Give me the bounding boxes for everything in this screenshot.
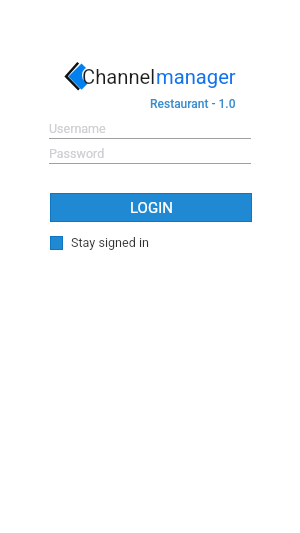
- button[interactable]: LOGIN: [50, 193, 252, 222]
- button[interactable]: [49, 143, 251, 166]
- staticText: Stay signed in: [71, 235, 149, 250]
- button[interactable]: [49, 118, 251, 141]
- staticText: Password: [49, 146, 105, 161]
- staticText: Restaurant - 1.0: [150, 97, 236, 111]
- button[interactable]: [49, 233, 149, 252]
- staticText: Username: [49, 121, 106, 136]
- staticText: LOGIN: [130, 199, 173, 217]
- staticText: manager: [156, 65, 236, 89]
- staticText: Channel: [82, 65, 156, 89]
- other: Channelmanager logo: [0, 0, 300, 533]
